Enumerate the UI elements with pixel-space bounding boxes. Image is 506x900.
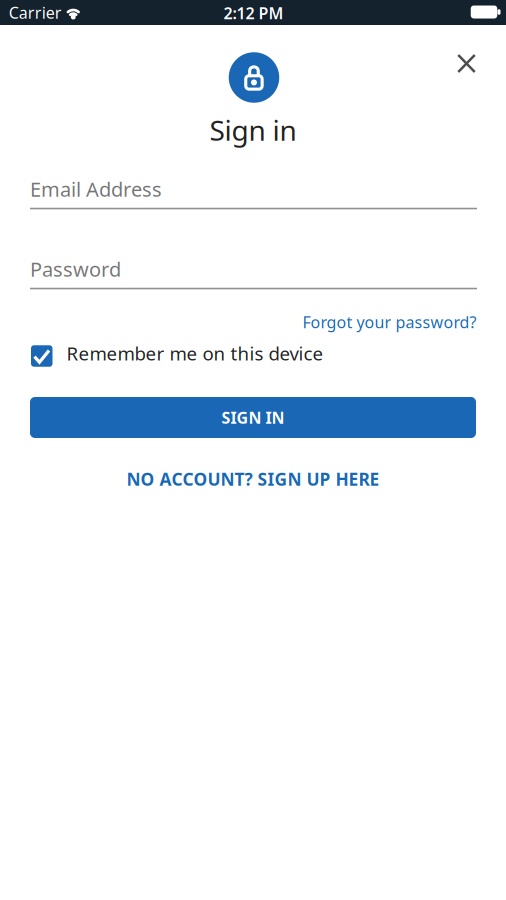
button[interactable]: Password xyxy=(30,256,477,289)
button[interactable]: NO ACCOUNT? SIGN UP HERE xyxy=(126,463,379,494)
button[interactable]: Remember me on this device xyxy=(31,344,478,368)
staticText: Carrier xyxy=(9,2,62,23)
staticText: NO ACCOUNT? SIGN UP HERE xyxy=(126,467,379,490)
staticText: Password xyxy=(30,256,121,282)
staticText: Email Address xyxy=(30,176,162,202)
staticText: Sign in xyxy=(209,111,296,148)
staticText: SIGN IN xyxy=(221,407,284,428)
staticText: 2:12 PM xyxy=(223,2,283,24)
staticText: Forgot your password? xyxy=(302,311,476,333)
button[interactable]: SIGN IN xyxy=(30,397,476,438)
button[interactable]: Email Address xyxy=(30,176,477,209)
staticText: Remember me on this device xyxy=(66,341,323,366)
button[interactable]: Close xyxy=(448,45,485,82)
button[interactable]: Forgot your password? xyxy=(300,307,478,337)
